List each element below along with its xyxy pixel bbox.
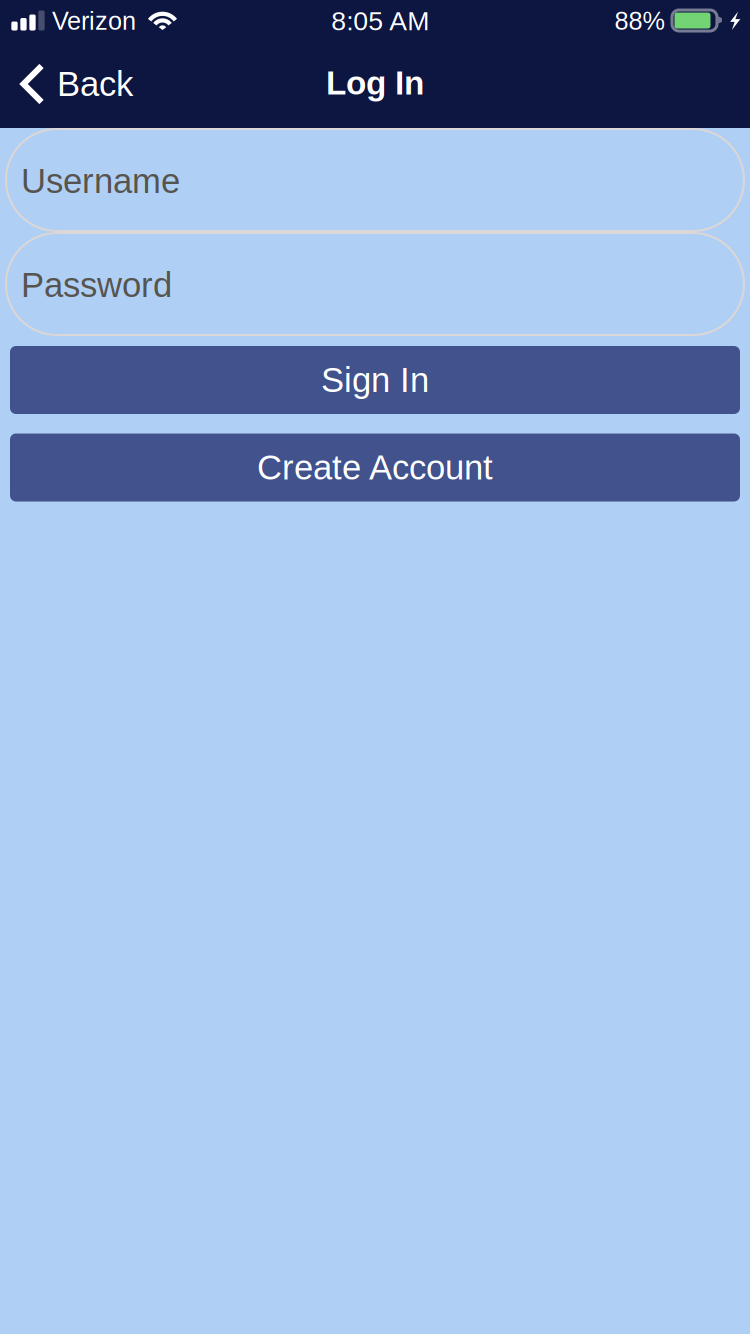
staticText: Password [21,266,172,304]
staticText: 8:05 AM [331,6,429,36]
button[interactable]: Username [0,128,750,232]
staticText: Log In [326,64,424,102]
staticText: Sign In [321,361,429,399]
button[interactable]: Password [0,232,750,336]
button[interactable]: Back [0,46,147,122]
staticText: Username [21,162,180,200]
button[interactable]: Create Account [0,433,750,501]
staticText: Create Account [257,448,493,487]
staticText: 88% [614,7,665,35]
staticText: Back [57,65,133,103]
staticText: Verizon [52,7,136,35]
button[interactable]: Sign In [0,346,750,414]
